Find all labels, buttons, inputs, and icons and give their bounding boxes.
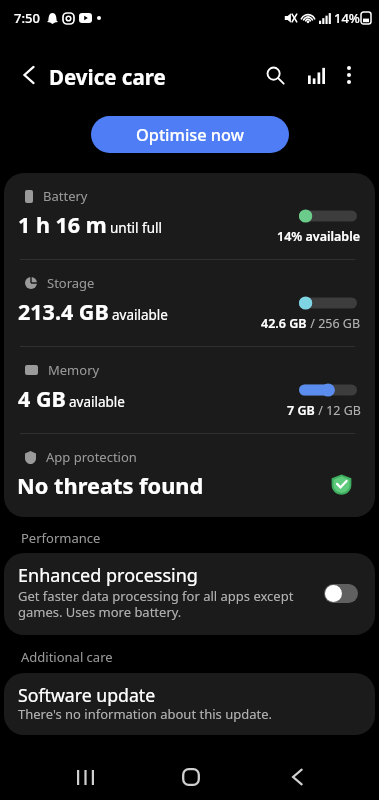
button[interactable]: Enhanced processing [4, 553, 375, 635]
button[interactable]: Usage statistics [297, 56, 335, 94]
button[interactable]: App protection [4, 434, 375, 517]
staticText: available [69, 393, 125, 411]
staticText: / 256 GB [307, 315, 361, 332]
staticText: Optimise now [136, 124, 244, 146]
staticText: 14% [334, 9, 360, 27]
button[interactable]: More options [327, 53, 371, 97]
staticText: / 12 GB [315, 402, 361, 419]
button[interactable]: Home [170, 756, 212, 798]
staticText: Get faster data processing for all apps … [18, 587, 294, 620]
staticText: Software update [18, 683, 156, 707]
staticText: No threats found [17, 471, 204, 501]
staticText: available [112, 306, 168, 324]
button[interactable]: Enhanced processing toggle [324, 584, 358, 603]
staticText: 42.6 GB [261, 315, 307, 332]
button[interactable]: Software update [4, 673, 375, 735]
button[interactable]: Recent apps [64, 756, 106, 798]
staticText: 213.4 GB [18, 297, 109, 326]
button[interactable]: Memory [4, 347, 375, 433]
staticText: 4 GB [18, 384, 66, 413]
staticText: Device care [49, 63, 166, 91]
staticText: 14% available [277, 228, 361, 245]
button[interactable]: Optimise now [91, 116, 289, 153]
button[interactable]: Navigate up [7, 53, 51, 97]
staticText: 7:50 [14, 9, 40, 27]
button[interactable]: Back [276, 756, 318, 798]
staticText: Storage [47, 274, 95, 292]
staticText: There's no information about this update… [18, 705, 272, 723]
staticText: Battery [43, 187, 88, 205]
button[interactable]: Battery [4, 173, 375, 259]
button[interactable]: Storage [4, 260, 375, 346]
staticText: 1 h 16 m [18, 210, 107, 239]
staticText: Additional care [21, 648, 113, 666]
staticText: until full [110, 219, 162, 237]
staticText: Memory [48, 361, 100, 379]
staticText: 7 GB [287, 402, 315, 419]
staticText: Performance [21, 529, 101, 547]
staticText: App protection [46, 448, 137, 466]
button[interactable]: Search [253, 53, 297, 97]
staticText: Enhanced processing [18, 563, 198, 588]
